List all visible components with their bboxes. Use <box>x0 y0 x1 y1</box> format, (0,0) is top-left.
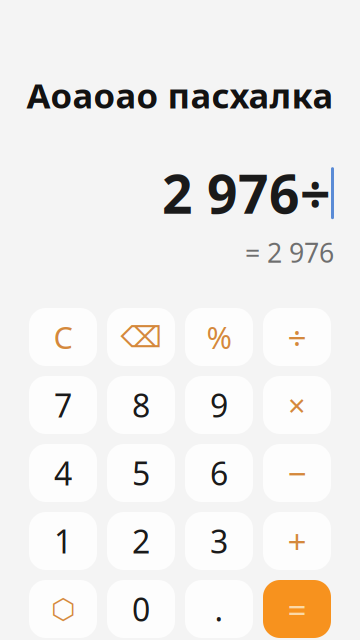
button[interactable]: 2 <box>107 512 175 570</box>
staticText: + <box>287 519 306 563</box>
button[interactable]: − <box>263 444 331 502</box>
staticText: 2 976÷ <box>162 158 331 229</box>
staticText: 3 <box>210 520 228 562</box>
button[interactable]: 3 <box>185 512 253 570</box>
staticText: 6 <box>210 452 228 494</box>
staticText: % <box>206 317 231 357</box>
button[interactable]: 7 <box>29 376 97 434</box>
button[interactable]: % <box>185 308 253 366</box>
staticText: 1 <box>54 520 72 562</box>
button[interactable]: Backspace <box>107 308 175 366</box>
staticText: 9 <box>210 384 228 426</box>
staticText: C <box>53 317 72 357</box>
button[interactable]: + <box>263 512 331 570</box>
button[interactable]: Clear <box>29 308 97 366</box>
staticText: − <box>287 451 306 495</box>
button[interactable]: 8 <box>107 376 175 434</box>
staticText: = 2 976 <box>245 235 334 270</box>
button[interactable]: 1 <box>29 512 97 570</box>
staticText: 4 <box>54 452 72 494</box>
staticText: ÷ <box>287 315 306 359</box>
button[interactable]: 9 <box>185 376 253 434</box>
button[interactable]: = <box>263 580 331 638</box>
button[interactable]: × <box>263 376 331 434</box>
button[interactable]: . <box>185 580 253 638</box>
staticText: 2 <box>132 520 150 562</box>
button[interactable]: ÷ <box>263 308 331 366</box>
button[interactable]: Formulas <box>29 580 97 638</box>
staticText: × <box>288 385 306 425</box>
staticText: Аоаоао пасхалка <box>26 72 333 118</box>
staticText: . <box>214 588 223 630</box>
staticText: = <box>287 587 306 631</box>
staticText: ⬡ <box>51 593 75 625</box>
staticText: ⌫ <box>120 320 161 354</box>
staticText: 0 <box>132 588 150 630</box>
staticText: 8 <box>132 384 150 426</box>
button[interactable]: 4 <box>29 444 97 502</box>
button[interactable]: 6 <box>185 444 253 502</box>
staticText: 7 <box>54 384 72 426</box>
staticText: 5 <box>132 452 150 494</box>
button[interactable]: 0 <box>107 580 175 638</box>
button[interactable]: 5 <box>107 444 175 502</box>
